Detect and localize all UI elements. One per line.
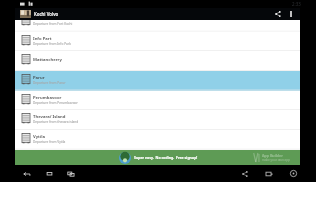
- button[interactable]: Fort Kochi: [15, 20, 300, 32]
- staticText: App Builder: [262, 153, 283, 158]
- button[interactable]: Recents: [64, 166, 78, 181]
- staticText: 2:33: [292, 1, 301, 7]
- staticText: Perumbavoor: [33, 95, 62, 101]
- button[interactable]: App Builder: [15, 150, 300, 165]
- staticText: Super easy. No coding. Free signup!: [134, 155, 198, 160]
- staticText: Info Part: [33, 36, 52, 42]
- staticText: make your own app: [262, 158, 290, 162]
- staticText: Kochi Volvo: [34, 11, 59, 17]
- staticText: Departure from Vytila: [33, 140, 66, 144]
- button[interactable]: Mattancherry: [15, 51, 300, 71]
- button[interactable]: Vytila: [15, 130, 300, 150]
- button[interactable]: Back: [20, 166, 34, 181]
- staticText: Thevara/ Island: [33, 114, 66, 120]
- staticText: Vytila: [33, 134, 45, 140]
- button[interactable]: Screenshot: [262, 166, 276, 181]
- staticText: Departure from Perumbavoor: [33, 101, 78, 105]
- staticText: Departure from Info Park: [33, 42, 71, 46]
- staticText: Parur: [33, 75, 45, 81]
- button[interactable]: More options: [285, 8, 297, 20]
- button[interactable]: Thevara/ Island: [15, 110, 300, 130]
- staticText: Departure from Fort Kochi: [33, 22, 73, 26]
- button[interactable]: Home: [42, 166, 56, 181]
- staticText: Departure from thevara island: [33, 120, 79, 124]
- button[interactable]: App icon: [20, 10, 31, 18]
- button[interactable]: Camera: [286, 166, 300, 181]
- button[interactable]: Info Part: [15, 32, 300, 52]
- button[interactable]: Share: [271, 8, 285, 20]
- button[interactable]: Share: [238, 166, 252, 181]
- staticText: Mattancherry: [33, 57, 62, 63]
- staticText: Departure from Parur: [33, 81, 66, 85]
- button[interactable]: Parur: [15, 71, 300, 91]
- button[interactable]: Perumbavoor: [15, 91, 300, 111]
